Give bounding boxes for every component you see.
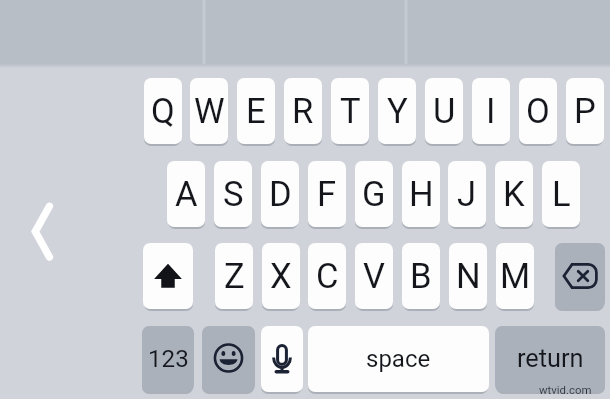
staticText: O <box>526 91 550 131</box>
button[interactable]: Voice input <box>261 326 303 392</box>
button[interactable]: Back <box>18 196 68 268</box>
button[interactable]: W <box>190 78 228 144</box>
button[interactable]: space <box>308 326 489 392</box>
button[interactable]: Delete <box>555 243 605 309</box>
button[interactable]: M <box>496 243 534 309</box>
staticText: Z <box>224 256 245 296</box>
button[interactable]: I <box>472 78 510 144</box>
staticText: Y <box>387 91 408 131</box>
button[interactable]: S <box>214 161 252 227</box>
staticText: U <box>433 91 456 131</box>
button[interactable]: V <box>355 243 393 309</box>
staticText: Q <box>151 91 175 131</box>
button[interactable]: D <box>261 161 299 227</box>
staticText: D <box>269 174 292 214</box>
button[interactable]: Shift <box>143 243 193 309</box>
staticText: wtvid.com <box>539 383 592 396</box>
staticText: M <box>500 256 531 296</box>
staticText: C <box>316 256 339 296</box>
staticText: W <box>194 91 225 131</box>
button[interactable]: R <box>284 78 322 144</box>
button[interactable]: Emoji <box>202 326 255 392</box>
button[interactable]: B <box>402 243 440 309</box>
staticText: V <box>363 256 385 296</box>
staticText: I <box>486 91 496 131</box>
staticText: H <box>409 174 434 214</box>
staticText: 123 <box>148 345 189 373</box>
button[interactable]: G <box>355 161 393 227</box>
button[interactable]: E <box>237 78 275 144</box>
button[interactable]: T <box>331 78 369 144</box>
staticText: F <box>317 174 337 214</box>
button[interactable]: F <box>308 161 346 227</box>
staticText: J <box>457 174 477 214</box>
button[interactable]: K <box>495 161 533 227</box>
staticText: B <box>410 256 432 296</box>
staticText: return <box>517 344 584 374</box>
staticText: L <box>552 174 571 214</box>
button[interactable]: N <box>449 243 487 309</box>
button[interactable]: Y <box>378 78 416 144</box>
staticText: P <box>574 91 596 131</box>
staticText: A <box>175 174 198 214</box>
staticText: X <box>270 256 292 296</box>
button[interactable]: A <box>167 161 205 227</box>
button[interactable]: Q <box>144 78 182 144</box>
staticText: R <box>292 91 314 131</box>
button[interactable]: O <box>519 78 557 144</box>
staticText: S <box>223 174 244 214</box>
button[interactable]: P <box>566 78 604 144</box>
staticText: E <box>246 91 266 131</box>
staticText: G <box>362 174 386 214</box>
button[interactable]: C <box>308 243 346 309</box>
staticText: N <box>456 256 481 296</box>
button[interactable]: Z <box>215 243 253 309</box>
staticText: T <box>340 91 361 131</box>
staticText: space <box>366 345 431 373</box>
button[interactable]: J <box>448 161 486 227</box>
button[interactable]: X <box>262 243 300 309</box>
staticText: K <box>503 174 525 214</box>
button[interactable]: H <box>402 161 440 227</box>
button[interactable]: L <box>542 161 580 227</box>
button[interactable]: 123 <box>142 326 194 392</box>
button[interactable]: U <box>425 78 463 144</box>
button[interactable]: return <box>495 326 605 392</box>
